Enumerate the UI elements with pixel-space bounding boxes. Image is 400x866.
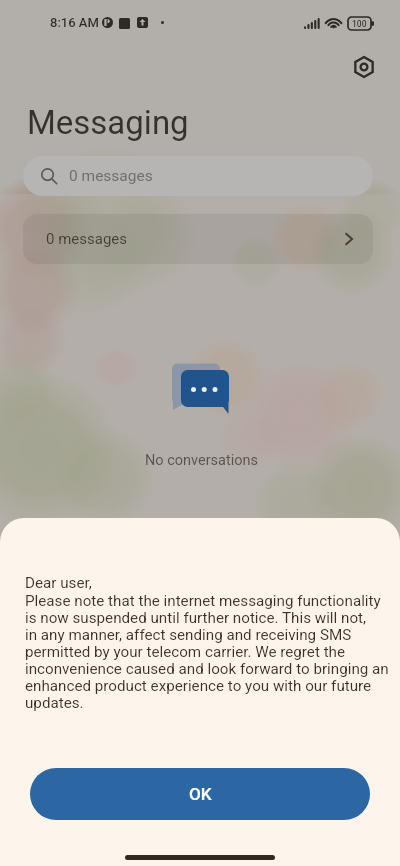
staticText: Messaging <box>27 103 189 142</box>
button[interactable]: 0 messages <box>23 214 373 264</box>
button[interactable]: 0 messages <box>23 156 373 196</box>
staticText: 0 messages <box>69 167 153 185</box>
staticText: 8:16 AM <box>50 15 99 30</box>
staticText: No conversations <box>145 452 259 469</box>
staticText: 0 messages <box>46 230 128 248</box>
staticText: OK <box>189 784 212 804</box>
button[interactable]: Settings <box>348 51 380 83</box>
staticText: Dear user, Please note that the internet… <box>25 574 389 711</box>
staticText: 100 <box>352 19 367 29</box>
button[interactable]: OK <box>30 768 370 820</box>
